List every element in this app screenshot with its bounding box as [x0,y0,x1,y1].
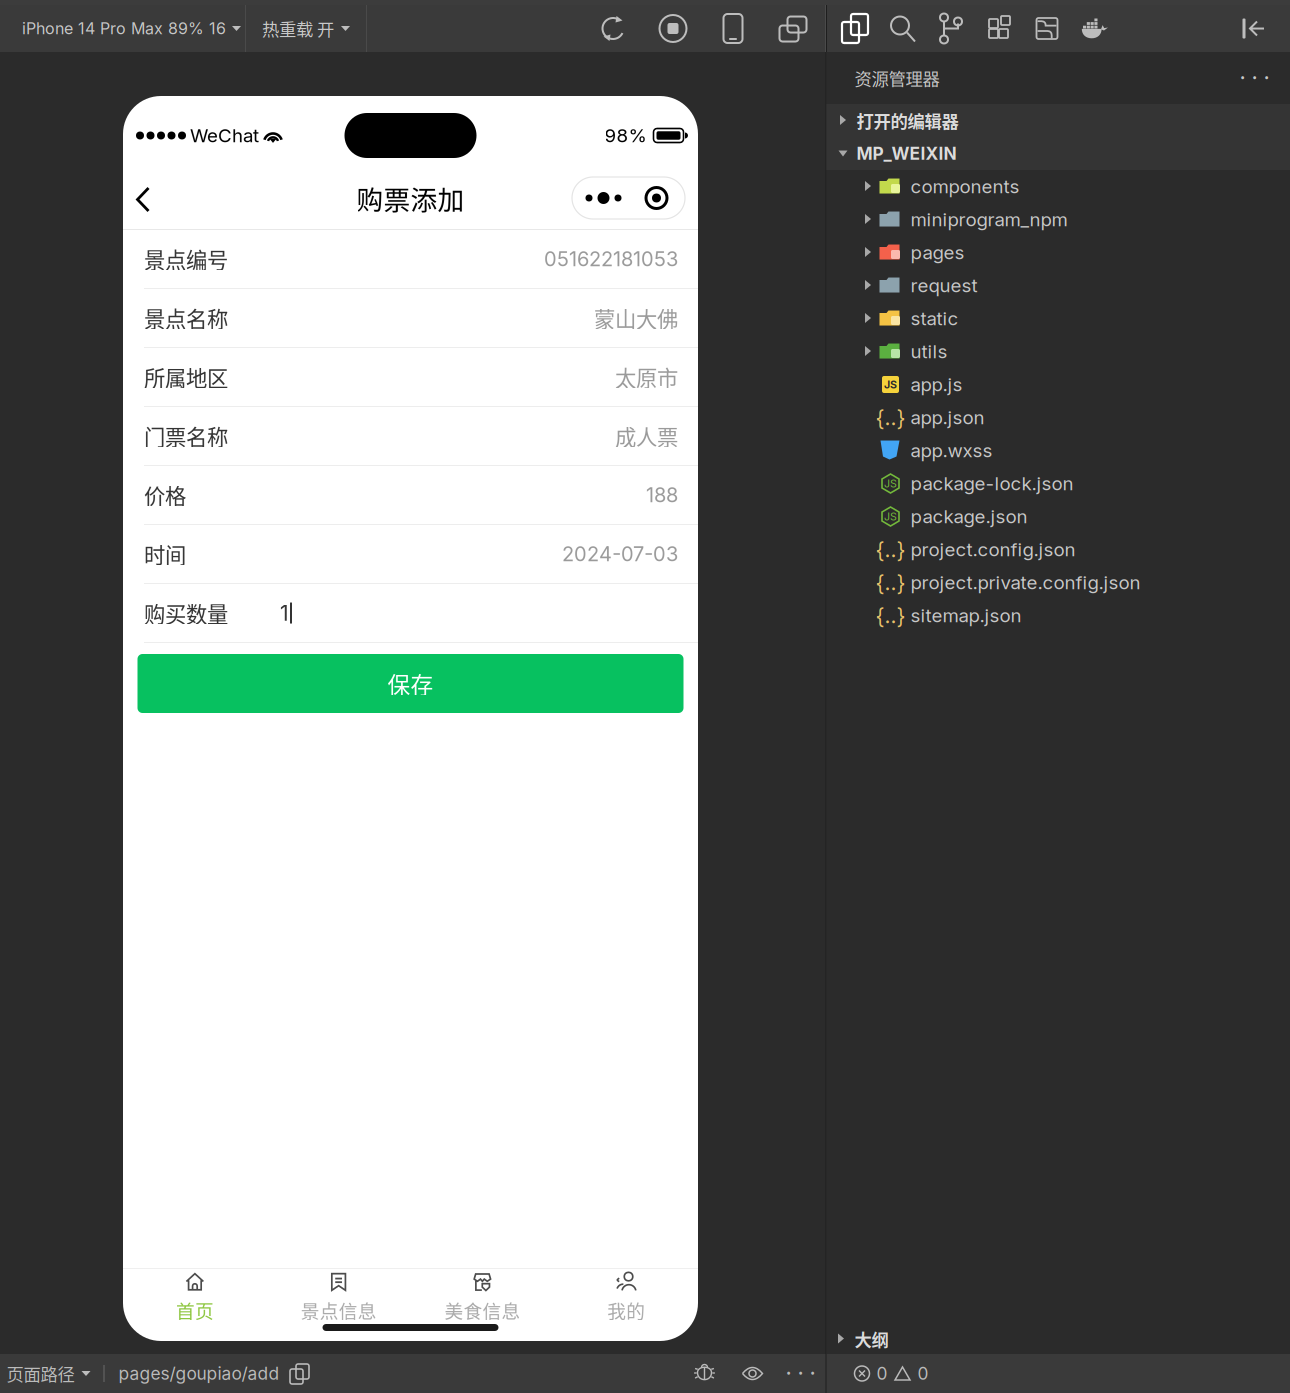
button[interactable]: {..} [826,401,1290,434]
button[interactable]: JS [826,467,1290,500]
staticText: 资源管理器 [854,65,939,91]
button[interactable]: 大纲 [826,1324,1290,1354]
button[interactable]: Preview on device [703,5,763,52]
staticText: 页面路径 [6,1361,74,1386]
button[interactable]: pages [826,236,1290,269]
staticText: project.config.json [910,538,1075,561]
staticText: 美食信息 [444,1296,520,1323]
staticText: JS [884,477,897,490]
button[interactable]: More [572,177,685,219]
staticText: 热重载 开 [262,16,334,41]
staticText: 我的 [607,1296,645,1323]
staticText: static [910,307,958,330]
staticText: {..} [875,570,905,595]
staticText: pages/goupiao/add [118,1363,279,1384]
button[interactable]: Source Control [927,5,975,52]
button[interactable]: components [826,170,1290,203]
staticText: 0 [917,1363,928,1384]
staticText: 时间 [144,539,186,569]
button[interactable]: {..} [826,599,1290,632]
staticText: package-lock.json [910,472,1073,495]
staticText: 1 [280,600,289,626]
button[interactable]: JS [826,500,1290,533]
button[interactable]: Debugger [680,1354,728,1393]
button[interactable]: More [776,1354,824,1393]
button[interactable]: utils [826,335,1290,368]
staticText: 所属地区 [144,362,228,392]
staticText: · · · [785,1360,815,1387]
button[interactable]: More actions [1234,61,1274,95]
staticText: WeChat [190,124,259,147]
staticText: 景点信息 [301,1296,377,1323]
staticText: 门票名称 [144,421,228,451]
button[interactable]: Preview [728,1354,776,1393]
staticText: · · · [1239,64,1269,92]
staticText: utils [910,340,947,363]
staticText: 大纲 [854,1326,888,1352]
staticText: app.wxss [910,439,992,462]
button[interactable]: 页面路径 [0,1354,103,1393]
staticText: project.private.config.json [910,571,1140,594]
button[interactable]: Problems [826,1354,928,1393]
button[interactable]: Copy path [279,1354,319,1393]
staticText: 蒙山大佛 [594,303,678,333]
staticText: 太原市 [615,362,678,392]
button[interactable]: MP_WEIXIN [826,137,1290,170]
staticText: request [910,274,977,297]
button[interactable]: static [826,302,1290,335]
staticText: 0 [876,1363,887,1384]
staticText: JS [884,378,897,391]
button[interactable]: Back [123,175,163,221]
staticText: 景点名称 [144,303,228,333]
staticText: 打开的编辑器 [856,108,958,133]
staticText: {..} [875,603,905,628]
button[interactable]: Split editor [1023,5,1071,52]
button[interactable]: 美食信息 [410,1269,554,1322]
staticText: iPhone 14 Pro Max 89% 16 [22,19,226,38]
button[interactable]: 热重载 开 [246,5,366,52]
button[interactable]: {..} [826,566,1290,599]
staticText: 价格 [144,480,186,510]
button[interactable]: 景点信息 [267,1269,411,1322]
button[interactable]: Refresh [583,5,643,52]
button[interactable]: 保存 [137,654,683,713]
button[interactable]: Extensions [975,5,1023,52]
button[interactable]: Docker [1071,5,1119,52]
staticText: 景点编号 [144,244,228,274]
button[interactable]: {..} [826,533,1290,566]
button[interactable]: Explorer [831,5,879,52]
staticText: MP_WEIXIN [856,143,956,164]
staticText: 98% [604,124,646,147]
staticText: app.js [910,373,962,396]
staticText: JS [884,510,897,523]
button[interactable]: Toggle panels [763,5,823,52]
button[interactable]: Compile [643,5,703,52]
staticText: 188 [646,483,678,507]
staticText: sitemap.json [910,604,1021,627]
staticText: {..} [875,405,905,430]
staticText: package.json [910,505,1027,528]
staticText: {..} [875,537,905,562]
staticText: 首页 [176,1296,214,1323]
staticText: 购票添加 [356,179,464,217]
button[interactable]: app.wxss [826,434,1290,467]
button[interactable]: miniprogram_npm [826,203,1290,236]
staticText: 购买数量 [144,598,228,628]
staticText: pages [910,241,964,264]
button[interactable]: JS [826,368,1290,401]
button[interactable]: 我的 [554,1269,698,1322]
staticText: 保存 [387,667,433,700]
staticText: components [910,175,1019,198]
button[interactable]: Collapse panel [1230,5,1278,52]
button[interactable]: 打开的编辑器 [826,104,1290,137]
staticText: 成人票 [615,421,678,451]
button[interactable]: Search [879,5,927,52]
button[interactable]: 首页 [123,1269,267,1322]
staticText: app.json [910,406,984,429]
staticText: miniprogram_npm [910,208,1067,231]
button[interactable]: iPhone 14 Pro Max 89% 16 [0,5,245,52]
staticText: 2024-07-03 [562,542,678,566]
button[interactable]: request [826,269,1290,302]
staticText: 051622181053 [544,247,678,271]
